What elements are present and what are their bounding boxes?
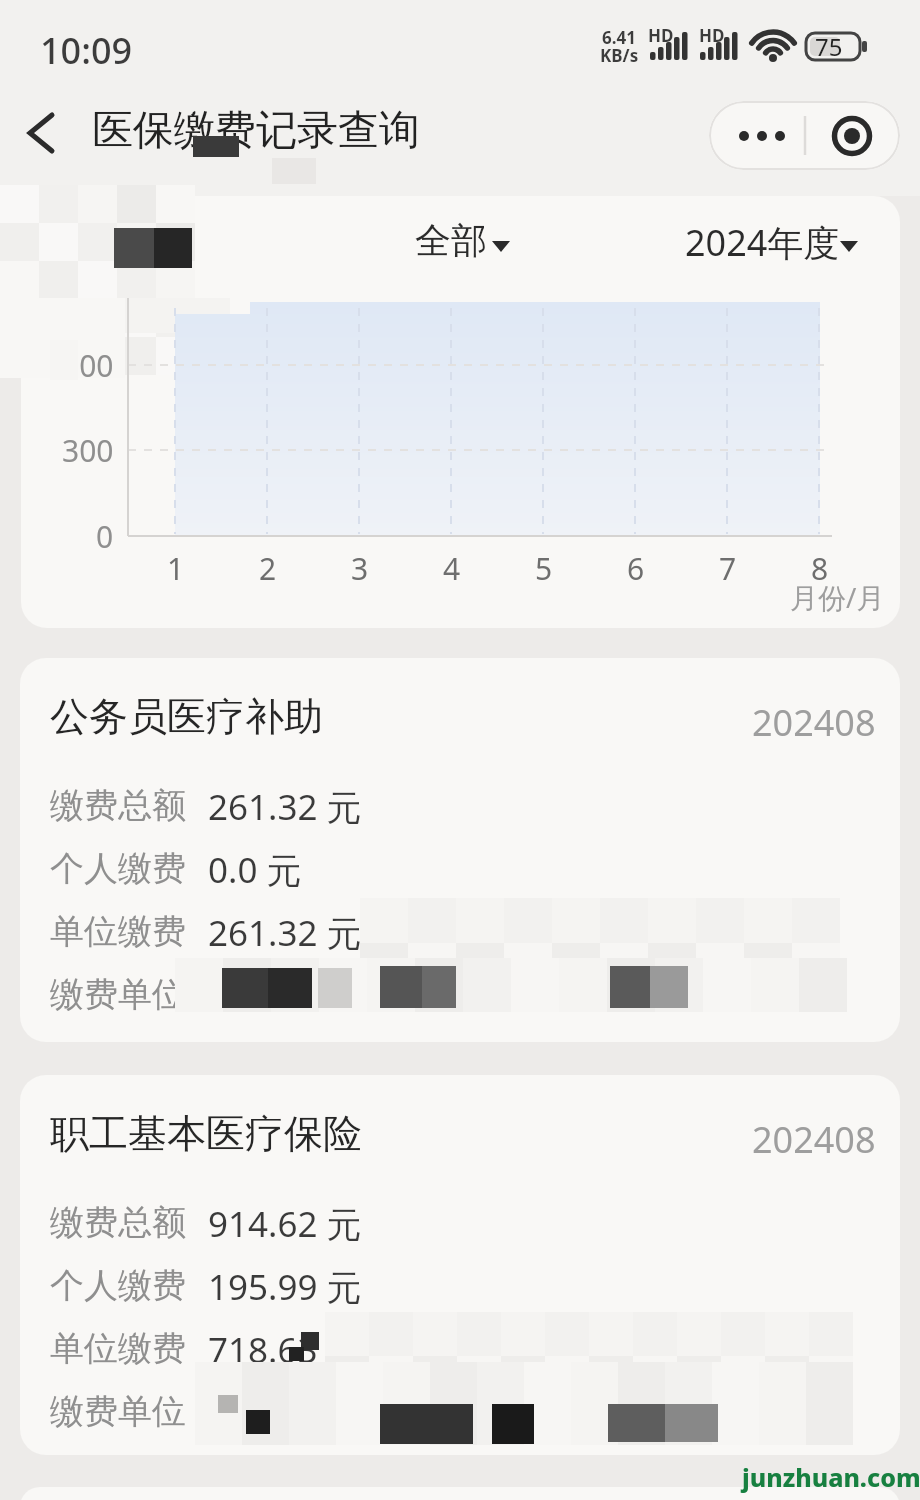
staticText: 缴费总额 — [50, 1201, 186, 1244]
staticText: 个人缴费 — [50, 847, 186, 890]
staticText: 2024年度 — [685, 218, 840, 267]
staticText: 914.62 元 — [208, 1200, 362, 1248]
staticText: 6 — [627, 548, 645, 589]
staticText: 600 — [62, 345, 114, 386]
staticText: 195.99 元 — [208, 1263, 362, 1311]
staticText: 缴费总额 — [50, 784, 186, 827]
staticText: 202408 — [752, 1115, 876, 1164]
staticText: 10:09 — [40, 26, 133, 75]
staticText: 3 — [351, 548, 369, 589]
staticText: 0 — [96, 516, 114, 557]
button[interactable]: 2024年度 — [670, 218, 865, 268]
staticText: 职工基本医疗保险 — [50, 1109, 362, 1158]
button[interactable] — [20, 1075, 900, 1455]
staticText: 75 — [815, 30, 843, 63]
staticText: 缴费单位 — [50, 1390, 186, 1433]
staticText: 718.63 — [208, 1326, 318, 1374]
staticText: 单位缴费 — [50, 1327, 186, 1370]
button[interactable] — [20, 658, 900, 1042]
button[interactable]: 全部 — [400, 218, 520, 268]
button[interactable] — [709, 101, 900, 170]
staticText: HD — [699, 24, 725, 47]
staticText: 261.32 元 — [208, 783, 362, 831]
staticText: 医保缴费记录查询 — [92, 105, 420, 157]
button[interactable] — [21, 196, 900, 628]
staticText: 2 — [259, 548, 277, 589]
staticText: 6.41 — [602, 26, 636, 49]
staticText: 缴费单位 — [50, 973, 186, 1016]
staticText: 个人缴费 — [50, 1264, 186, 1307]
staticText: 0.0 元 — [208, 846, 302, 894]
staticText: 全部 — [415, 218, 487, 263]
staticText: HD — [648, 24, 674, 47]
staticText: 1 — [167, 548, 185, 589]
staticText: 7 — [719, 548, 737, 589]
staticText: 公务员医疗补助 — [50, 692, 323, 741]
staticText: junzhuan.com — [742, 1460, 920, 1494]
staticText: 月份/月 — [790, 578, 885, 616]
staticText: 8 — [811, 548, 829, 589]
staticText: 4 — [443, 548, 461, 589]
staticText: 5 — [535, 548, 553, 589]
staticText: 261.32 元 — [208, 909, 362, 957]
staticText: 202408 — [752, 698, 876, 747]
button[interactable] — [20, 105, 70, 165]
staticText: 300 — [62, 430, 114, 471]
staticText: 单位缴费 — [50, 910, 186, 953]
staticText: KB/s — [600, 44, 639, 67]
